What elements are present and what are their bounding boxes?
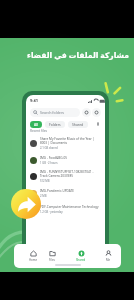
staticText: 2 MB (40, 194, 47, 198)
staticText: IMG - FUNNYSTUFFSET-1082837041 - Track C… (40, 170, 101, 178)
staticText: Shared (72, 122, 84, 127)
button[interactable]: Share (11, 189, 41, 219)
staticText: Me (106, 258, 111, 262)
staticText: IMG-Pandemic-UPDATE (40, 189, 74, 193)
button[interactable]: More options (95, 121, 101, 127)
button[interactable]: Search folders (30, 108, 80, 117)
staticText: Home (29, 258, 37, 262)
staticText: 2.1 GB shared (40, 146, 58, 150)
button[interactable]: Home (25, 244, 41, 268)
button[interactable]: PDF-Computer Maintenance Technology (30, 201, 101, 217)
staticText: 512 MB (40, 179, 50, 183)
button[interactable]: Folders (45, 121, 65, 128)
button[interactable]: Scan (82, 108, 91, 117)
staticText: PDF-Computer Maintenance Technology (40, 205, 99, 209)
button[interactable]: Shared (68, 121, 88, 128)
staticText: 1.2 GB · yesterday (40, 210, 63, 214)
button[interactable]: Account (92, 108, 101, 117)
button[interactable]: Me (100, 244, 116, 268)
staticText: IMG - Food&BG-05 (40, 156, 68, 160)
button[interactable]: Files (44, 244, 60, 268)
staticText: مشاركة الملفات في الفضاء (27, 50, 129, 60)
button[interactable]: All (30, 121, 42, 128)
staticText: Recent files (30, 129, 48, 133)
staticText: 9:41 (30, 98, 38, 103)
staticText: 1 GB · 2 hours (40, 161, 58, 165)
button[interactable]: Share My Favorite Music of the Year | 80… (30, 135, 101, 152)
button[interactable]: IMG - Food&BG-05 (30, 152, 101, 168)
staticText: All (34, 122, 38, 127)
staticText: Shared (76, 258, 86, 262)
staticText: Folders (49, 122, 61, 127)
staticText: Share My Favorite Music of the Year | 80… (40, 137, 101, 145)
button[interactable]: Shared (72, 244, 90, 268)
staticText: Files (49, 258, 55, 262)
button[interactable]: IMG-Pandemic-UPDATE (30, 185, 101, 201)
staticText: Search folders (40, 110, 65, 115)
button[interactable]: IMG - FUNNYSTUFFSET-1082837041 - Track C… (30, 168, 101, 185)
